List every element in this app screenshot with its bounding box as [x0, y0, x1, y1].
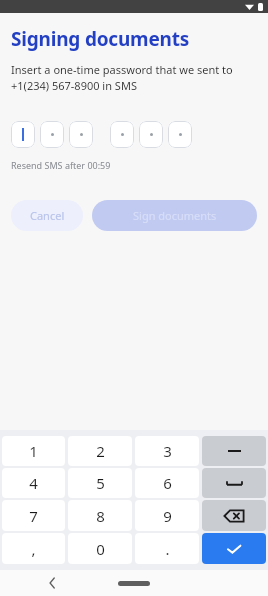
- button[interactable]: 2: [68, 436, 132, 466]
- staticText: 6: [163, 473, 172, 493]
- button[interactable]: [69, 121, 93, 148]
- staticText: Resend SMS after 00:59: [11, 159, 111, 171]
- staticText: Signing documents: [11, 26, 190, 52]
- staticText: 1: [29, 441, 38, 461]
- staticText: 3: [163, 441, 172, 461]
- button[interactable]: Dash: [202, 436, 266, 466]
- button[interactable]: 4: [2, 468, 65, 498]
- button[interactable]: [110, 121, 134, 148]
- staticText: .: [165, 539, 170, 559]
- button[interactable]: [40, 121, 64, 148]
- staticText: 7: [29, 506, 38, 526]
- button[interactable]: 0: [68, 533, 132, 564]
- button[interactable]: 7: [2, 500, 65, 531]
- button[interactable]: 5: [68, 468, 132, 498]
- button[interactable]: .: [135, 533, 199, 564]
- staticText: 8: [96, 506, 105, 526]
- staticText: Sign documents: [133, 208, 217, 223]
- button[interactable]: 9: [135, 500, 199, 531]
- staticText: 4: [29, 473, 38, 493]
- button[interactable]: Back: [42, 573, 62, 593]
- staticText: 9: [163, 506, 172, 526]
- staticText: 0: [96, 539, 105, 559]
- button[interactable]: Cancel: [11, 200, 83, 231]
- button[interactable]: ,: [2, 533, 65, 564]
- button[interactable]: 6: [135, 468, 199, 498]
- button[interactable]: Space: [202, 468, 266, 498]
- button[interactable]: 3: [135, 436, 199, 466]
- button[interactable]: Confirm: [202, 533, 266, 564]
- button[interactable]: Home: [118, 581, 150, 586]
- staticText: Insert a one-time password that we sent …: [11, 62, 233, 94]
- staticText: 5: [96, 473, 105, 493]
- button[interactable]: [139, 121, 163, 148]
- button[interactable]: 1: [2, 436, 65, 466]
- staticText: ,: [31, 539, 36, 559]
- button[interactable]: Backspace: [202, 500, 266, 531]
- button[interactable]: 8: [68, 500, 132, 531]
- button[interactable]: [11, 121, 35, 148]
- button[interactable]: Sign documents: [92, 200, 257, 231]
- staticText: 2: [96, 441, 105, 461]
- button[interactable]: [168, 121, 192, 148]
- staticText: Cancel: [30, 208, 65, 223]
